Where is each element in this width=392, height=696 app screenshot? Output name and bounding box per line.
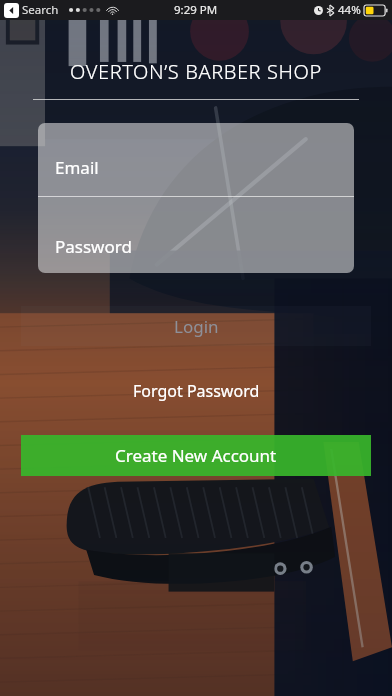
staticText: 44% (338, 2, 361, 18)
button[interactable]: Login (21, 306, 371, 346)
staticText: Create New Account (115, 444, 277, 467)
staticText: OVERTON’S BARBER SHOP (0, 58, 392, 85)
button[interactable]: Forgot Password (119, 375, 274, 407)
staticText: Forgot Password (133, 380, 260, 402)
button[interactable]: Password (38, 197, 354, 273)
staticText: 9:29 PM (174, 2, 218, 18)
staticText: Search (22, 2, 59, 18)
staticText: Login (174, 315, 219, 338)
staticText: Email (55, 156, 99, 179)
button[interactable]: Email (38, 123, 354, 196)
staticText: Password (55, 235, 132, 258)
button[interactable]: Back (4, 3, 19, 18)
button[interactable]: Create New Account (21, 435, 371, 476)
